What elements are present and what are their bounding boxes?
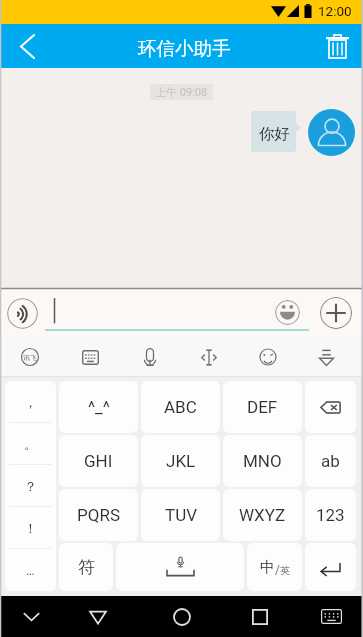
staticText: MNO — [243, 451, 282, 471]
button[interactable]: Home — [158, 596, 206, 637]
staticText: ab — [321, 451, 340, 471]
staticText: 符 — [78, 557, 95, 578]
button[interactable]: Hide panel — [297, 337, 356, 377]
staticText: 上午 09:08 — [155, 85, 208, 99]
button[interactable]: WXYZ — [223, 489, 302, 541]
staticText: 英 — [280, 564, 290, 577]
staticText: ， — [24, 394, 37, 410]
button[interactable]: Voice input — [120, 337, 179, 377]
button[interactable]: Back — [0, 24, 52, 68]
button[interactable]: More options — [320, 297, 352, 329]
button[interactable]: Recent apps — [236, 596, 284, 637]
button[interactable]: DEF — [223, 381, 302, 433]
button[interactable]: Switch input method — [307, 596, 355, 637]
staticText: ？ — [24, 478, 37, 494]
button[interactable]: Input method settings — [0, 337, 60, 377]
button[interactable]: Hide keyboard — [7, 596, 55, 637]
staticText: 。 — [24, 436, 37, 452]
staticText: … — [26, 563, 35, 578]
button[interactable]: Space — [116, 543, 244, 591]
button[interactable]: Emoji — [275, 300, 300, 325]
button[interactable]: ！ — [5, 507, 56, 549]
staticText: WXYZ — [239, 505, 286, 525]
staticText: ！ — [24, 520, 37, 536]
button[interactable]: Enter — [305, 543, 356, 591]
button[interactable]: JKL — [141, 435, 220, 487]
button[interactable]: ABC — [141, 381, 220, 433]
button[interactable]: Emoji — [238, 337, 297, 377]
button[interactable]: Voice message — [7, 298, 38, 329]
staticText: 讯飞 — [23, 353, 37, 362]
button[interactable]: Keyboard layout — [60, 337, 120, 377]
button[interactable]: … — [5, 549, 56, 591]
button[interactable]: Move cursor — [179, 337, 238, 377]
button[interactable]: MNO — [223, 435, 302, 487]
button[interactable]: 123 — [305, 489, 356, 541]
button[interactable]: 你好 — [251, 111, 301, 152]
staticText: 中 — [260, 558, 275, 577]
button[interactable]: TUV — [141, 489, 220, 541]
staticText: ABC — [164, 397, 197, 417]
staticText: TUV — [165, 505, 197, 525]
button[interactable]: Back — [74, 596, 122, 637]
staticText: GHI — [84, 451, 113, 471]
staticText: JKL — [166, 451, 196, 471]
staticText: DEF — [247, 397, 278, 417]
button[interactable]: ， — [5, 381, 56, 423]
staticText: / — [275, 563, 280, 577]
button[interactable]: PQRS — [59, 489, 138, 541]
button[interactable]: Avatar — [308, 109, 355, 156]
button[interactable]: ？ — [5, 465, 56, 507]
staticText: PQRS — [77, 505, 120, 525]
staticText: 12:00 — [318, 3, 352, 19]
button[interactable] — [45, 296, 309, 331]
button[interactable]: Delete conversation — [311, 24, 363, 68]
button[interactable]: 。 — [5, 423, 56, 465]
staticText: 123 — [316, 505, 345, 525]
button[interactable]: ab — [305, 435, 356, 487]
staticText: 环信小助手 — [138, 37, 231, 60]
staticText: 你好 — [259, 124, 290, 144]
button[interactable]: Backspace — [305, 381, 356, 433]
button[interactable]: ^_^ — [59, 381, 138, 433]
staticText: ^_^ — [88, 397, 110, 417]
button[interactable]: 中 — [247, 543, 302, 591]
button[interactable]: 符 — [59, 543, 113, 591]
button[interactable]: GHI — [59, 435, 138, 487]
